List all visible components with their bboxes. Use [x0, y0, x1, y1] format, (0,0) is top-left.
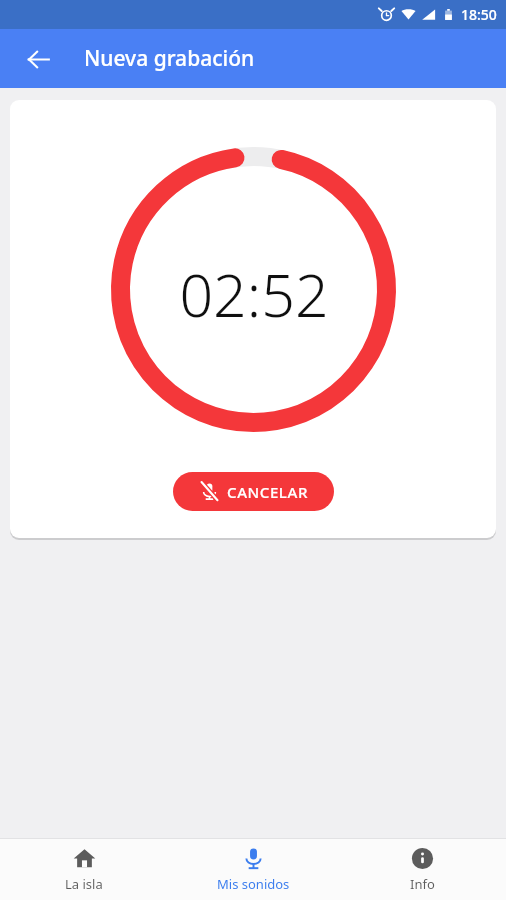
staticText: Mis sonidos: [217, 875, 290, 893]
staticText: 18:50: [461, 5, 497, 24]
staticText: Nueva grabación: [84, 44, 255, 73]
button[interactable]: CANCELAR: [173, 472, 334, 511]
staticText: Info: [410, 875, 435, 893]
staticText: CANCELAR: [227, 482, 308, 502]
button[interactable]: Info: [347, 839, 497, 900]
button[interactable]: La isla: [9, 839, 159, 900]
staticText: 02:52: [179, 254, 329, 334]
staticText: La isla: [65, 875, 103, 893]
button[interactable]: Atrás: [17, 38, 59, 80]
button[interactable]: Mis sonidos: [178, 839, 328, 900]
